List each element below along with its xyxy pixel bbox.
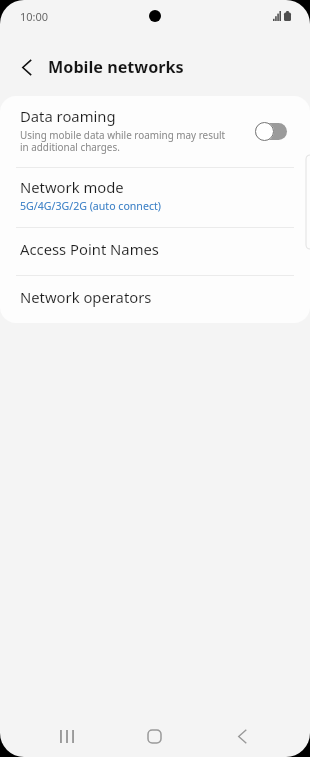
button[interactable]: Navigate up <box>0 42 48 92</box>
button[interactable]: Network mode <box>0 168 310 227</box>
button[interactable]: Access Point Names <box>0 228 310 275</box>
button[interactable]: Home <box>132 716 176 756</box>
staticText: Using mobile data while roaming may resu… <box>20 128 226 154</box>
button[interactable]: Network operators <box>0 276 310 323</box>
button[interactable]: Recent apps <box>45 716 89 756</box>
staticText: Mobile networks <box>48 56 184 78</box>
button[interactable]: Back <box>219 716 263 756</box>
staticText: 5G/4G/3G/2G (auto connect) <box>20 199 161 213</box>
staticText: Access Point Names <box>20 239 159 259</box>
staticText: Network mode <box>20 177 124 197</box>
staticText: Data roaming <box>20 106 116 126</box>
staticText: 10:00 <box>20 9 49 24</box>
staticText: Network operators <box>20 287 152 307</box>
button[interactable]: Data roaming <box>0 96 310 167</box>
